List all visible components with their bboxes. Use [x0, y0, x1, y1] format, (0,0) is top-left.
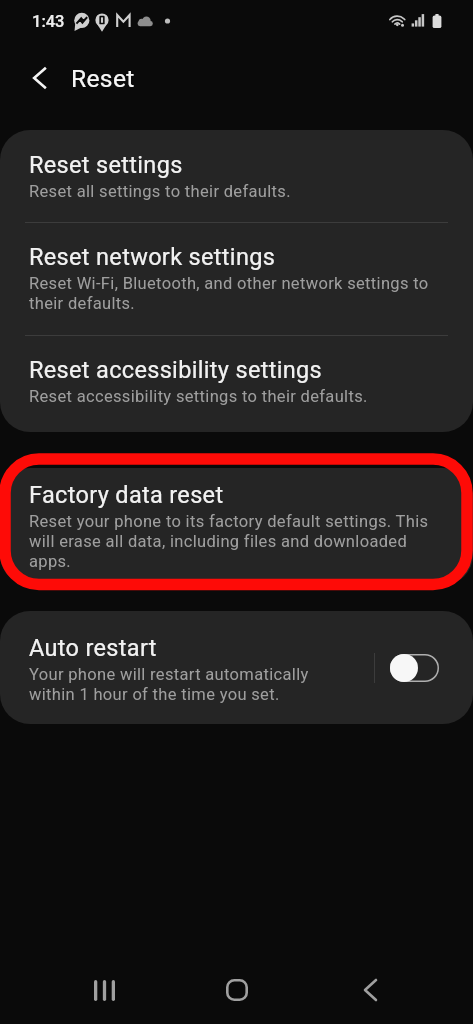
staticText: Reset	[71, 64, 135, 93]
staticText: Your phone will restart automatically wi…	[29, 665, 329, 705]
button[interactable]: Reset settings	[0, 130, 473, 222]
staticText: Reset all settings to their defaults.	[29, 182, 291, 202]
button[interactable]: Auto restart toggle, off	[390, 654, 439, 682]
button[interactable]: Navigate up	[18, 56, 62, 100]
staticText: Factory data reset	[29, 482, 224, 509]
staticText: Reset network settings	[29, 244, 276, 271]
button[interactable]: Back	[335, 958, 405, 1022]
staticText: Reset your phone to its factory default …	[29, 512, 433, 572]
button[interactable]: Reset accessibility settings	[0, 336, 473, 432]
staticText: Reset Wi-Fi, Bluetooth, and other networ…	[29, 274, 433, 314]
button[interactable]: Recent apps	[69, 958, 139, 1022]
staticText: Reset accessibility settings to their de…	[29, 387, 368, 407]
staticText: Auto restart	[29, 635, 157, 662]
staticText: Reset accessibility settings	[29, 357, 323, 384]
staticText: Reset settings	[29, 152, 183, 179]
staticText: 1:43	[32, 12, 65, 31]
button[interactable]: Home	[202, 958, 272, 1022]
button[interactable]: Auto restart	[0, 611, 473, 724]
button[interactable]: Reset network settings	[0, 223, 473, 335]
button[interactable]: Factory data reset	[0, 468, 473, 585]
